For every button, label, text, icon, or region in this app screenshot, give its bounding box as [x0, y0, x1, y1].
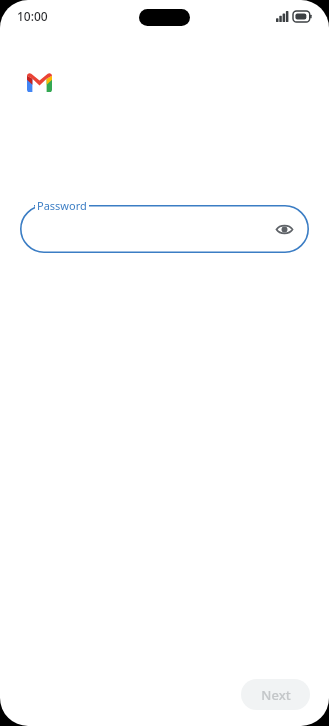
button[interactable]: Password — [20, 205, 309, 253]
staticText: Password — [37, 198, 87, 213]
staticText: Next — [261, 686, 291, 704]
button[interactable]: Next — [241, 679, 310, 710]
staticText: 10:00 — [17, 8, 48, 24]
button[interactable]: Show password — [272, 217, 296, 241]
